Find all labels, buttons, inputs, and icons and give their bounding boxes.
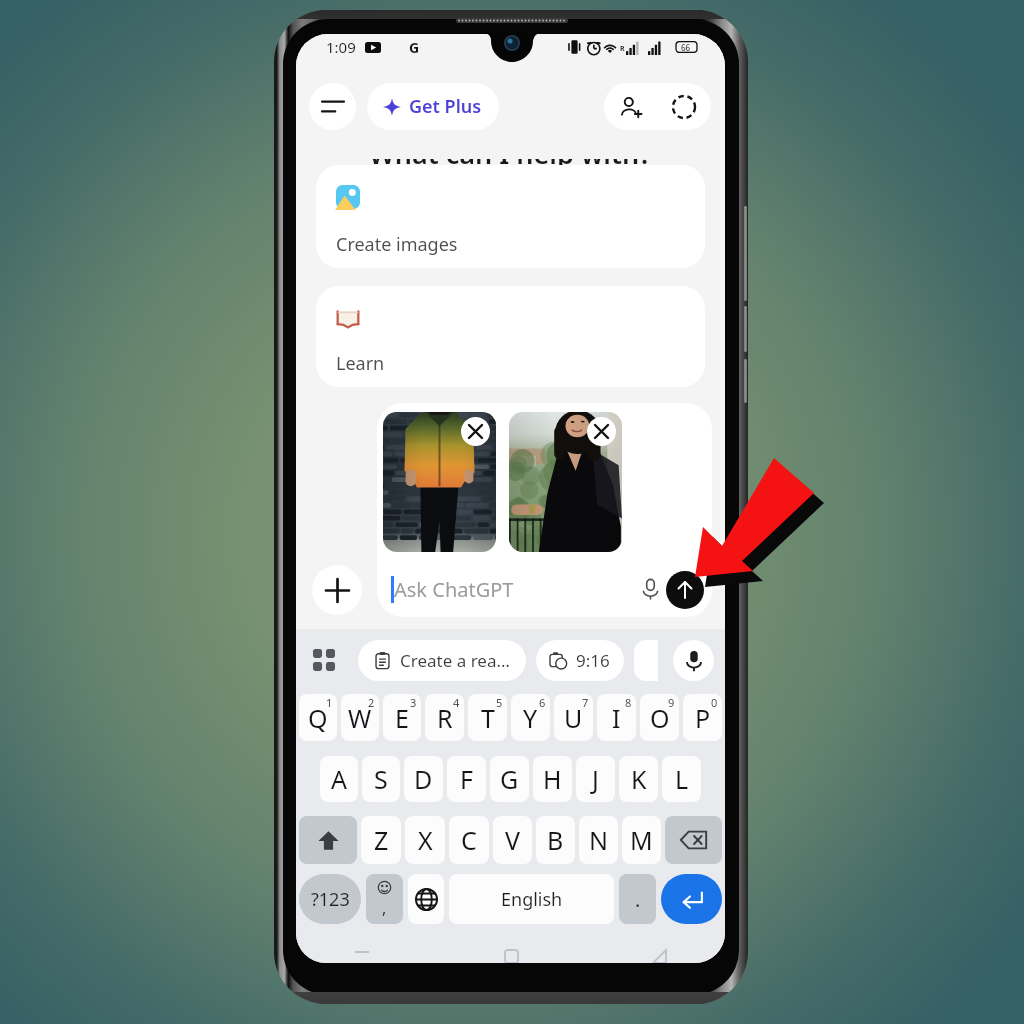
button[interactable]: Get Plus: [367, 83, 499, 130]
button[interactable]: Home: [495, 945, 527, 963]
button[interactable]: Shift: [299, 816, 357, 864]
staticText: G: [500, 762, 519, 796]
button[interactable]: Enter: [661, 874, 722, 924]
staticText: Create a rea…: [400, 649, 510, 672]
button[interactable]: X: [405, 816, 445, 864]
button[interactable]: ?123: [299, 874, 361, 924]
button[interactable]: Keyboard toolbar: [310, 640, 338, 680]
button[interactable]: M: [622, 816, 661, 864]
button[interactable]: Create a rea…: [358, 640, 526, 681]
button[interactable]: K: [619, 756, 658, 802]
button[interactable]: Q: [299, 694, 337, 741]
staticText: F: [460, 762, 473, 796]
staticText: 5: [496, 695, 503, 710]
button[interactable]: Menu: [309, 83, 356, 130]
staticText: 8: [625, 695, 632, 710]
button[interactable]: English: [449, 874, 614, 924]
button[interactable]: J: [576, 756, 615, 802]
staticText: L: [675, 762, 689, 796]
staticText: Z: [374, 823, 389, 857]
button[interactable]: G: [490, 756, 529, 802]
button[interactable]: L: [662, 756, 701, 802]
button[interactable]: Remove image: [587, 417, 616, 446]
button[interactable]: Voice typing: [673, 640, 714, 681]
staticText: 9:16: [576, 649, 610, 672]
staticText: 66: [681, 42, 691, 53]
staticText: R: [437, 701, 453, 735]
staticText: V: [505, 823, 521, 857]
button[interactable]: H: [533, 756, 572, 802]
staticText: 4: [453, 695, 460, 710]
button[interactable]: I: [597, 694, 636, 741]
staticText: H: [543, 762, 562, 796]
staticText: Ask ChatGPT: [394, 576, 514, 603]
button[interactable]: 9:16: [536, 640, 624, 681]
button[interactable]: Send: [666, 571, 704, 609]
staticText: I: [612, 701, 621, 735]
staticText: 1:09: [326, 37, 356, 57]
staticText: S: [374, 762, 388, 796]
button[interactable]: P: [683, 694, 722, 741]
staticText: G: [409, 38, 420, 57]
staticText: K: [631, 762, 647, 796]
button[interactable]: Add attachment: [312, 565, 362, 615]
staticText: X: [418, 823, 433, 857]
button[interactable]: N: [579, 816, 618, 864]
button[interactable]: F: [447, 756, 486, 802]
staticText: Create images: [336, 232, 458, 257]
button[interactable]: D: [404, 756, 443, 802]
staticText: 6: [539, 695, 546, 710]
staticText: U: [564, 701, 583, 735]
button[interactable]: Create images: [316, 165, 705, 268]
staticText: What can I help with?: [369, 135, 652, 172]
staticText: 1: [326, 695, 333, 710]
button[interactable]: Recents: [346, 945, 378, 963]
staticText: 9: [668, 695, 675, 710]
button[interactable]: V: [493, 816, 532, 864]
button[interactable]: Remove image: [461, 417, 490, 446]
staticText: A: [331, 762, 347, 796]
staticText: D: [414, 762, 433, 796]
staticText: T: [481, 701, 495, 735]
button[interactable]: A: [320, 756, 358, 802]
button[interactable]: C: [449, 816, 489, 864]
staticText: 7: [582, 695, 589, 710]
staticText: O: [650, 701, 670, 735]
staticText: 2: [368, 695, 375, 710]
staticText: English: [501, 887, 563, 912]
staticText: Y: [523, 701, 538, 735]
button[interactable]: .: [619, 874, 656, 924]
staticText: Learn: [336, 351, 385, 376]
button[interactable]: Add person: [604, 83, 657, 130]
button[interactable]: B: [536, 816, 575, 864]
staticText: B: [547, 823, 564, 857]
button[interactable]: O: [640, 694, 679, 741]
button[interactable]: Learn: [316, 286, 705, 387]
button[interactable]: Back: [643, 945, 675, 963]
button[interactable]: T: [468, 694, 507, 741]
button[interactable]: Backspace: [665, 816, 722, 864]
button[interactable]: Change language: [408, 874, 444, 924]
staticText: M: [630, 823, 653, 857]
staticText: J: [592, 762, 599, 796]
button[interactable]: Emoji: [366, 874, 403, 924]
button[interactable]: U: [554, 694, 593, 741]
staticText: R: [620, 44, 625, 54]
staticText: N: [589, 823, 609, 857]
staticText: C: [461, 823, 477, 857]
staticText: ,: [382, 897, 387, 919]
button[interactable]: W: [341, 694, 379, 741]
button[interactable]: Y: [511, 694, 550, 741]
button[interactable]: New chat: [657, 83, 711, 130]
staticText: W: [348, 701, 372, 735]
staticText: P: [695, 701, 711, 735]
button[interactable]: S: [362, 756, 400, 802]
staticText: .: [635, 886, 641, 913]
button[interactable]: Voice input: [633, 572, 667, 606]
button[interactable]: E: [383, 694, 421, 741]
staticText: E: [395, 701, 409, 735]
staticText: 0: [711, 695, 718, 710]
button[interactable]: R: [425, 694, 464, 741]
button[interactable]: Z: [361, 816, 401, 864]
staticText: ?123: [311, 887, 350, 912]
